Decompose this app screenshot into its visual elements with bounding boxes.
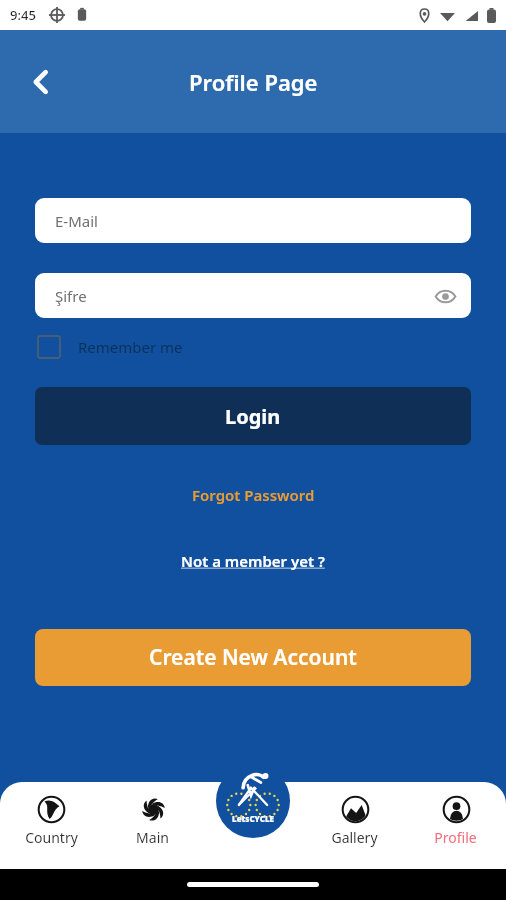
staticText: Login [225, 403, 281, 430]
button[interactable]: Login [35, 387, 471, 445]
staticText: 9:45 [10, 6, 36, 24]
button[interactable]: E-Mail [35, 198, 471, 243]
button[interactable]: Şifre [35, 273, 471, 318]
button[interactable]: LetsCYCLE Home [216, 764, 290, 838]
staticText: Şifre [55, 286, 87, 306]
staticText: Forgot Password [192, 485, 315, 505]
button[interactable]: Create New Account [35, 629, 471, 686]
staticText: Main [136, 828, 169, 847]
button[interactable]: Not a member yet ? [173, 547, 333, 575]
staticText: Country [25, 828, 78, 847]
staticText: Remember me [78, 337, 183, 357]
staticText: E-Mail [55, 211, 98, 231]
staticText: LetsCYCLE [232, 813, 274, 824]
button[interactable]: Forgot Password [184, 481, 323, 509]
button[interactable]: Remember me [35, 333, 183, 360]
button[interactable]: Show password [433, 284, 457, 308]
staticText: Create New Account [149, 643, 357, 672]
button[interactable]: Gallery [304, 790, 405, 851]
staticText: Gallery [331, 828, 378, 847]
button[interactable]: Profile [405, 790, 506, 851]
staticText: Profile Page [189, 67, 318, 97]
staticText: Profile [434, 828, 477, 847]
button[interactable]: Main [102, 790, 203, 851]
button[interactable]: Back [18, 59, 64, 105]
button[interactable]: Country [0, 790, 102, 851]
staticText: Not a member yet ? [181, 551, 325, 571]
